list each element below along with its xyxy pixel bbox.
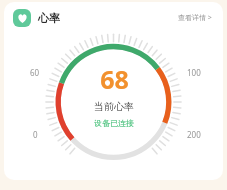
staticText: 100 bbox=[187, 67, 201, 78]
staticText: 心率 bbox=[38, 11, 60, 25]
staticText: 200 bbox=[187, 129, 201, 140]
staticText: 60 bbox=[30, 67, 40, 78]
staticText: 68 bbox=[100, 62, 129, 96]
staticText: 当前心率 bbox=[94, 100, 134, 113]
staticText: 0 bbox=[33, 129, 38, 140]
button[interactable]: Heart rate bbox=[13, 9, 31, 27]
staticText: 设备已连接 bbox=[94, 118, 134, 128]
button[interactable]: 查看详情 > bbox=[176, 11, 214, 25]
staticText: 查看详情 > bbox=[178, 13, 212, 23]
